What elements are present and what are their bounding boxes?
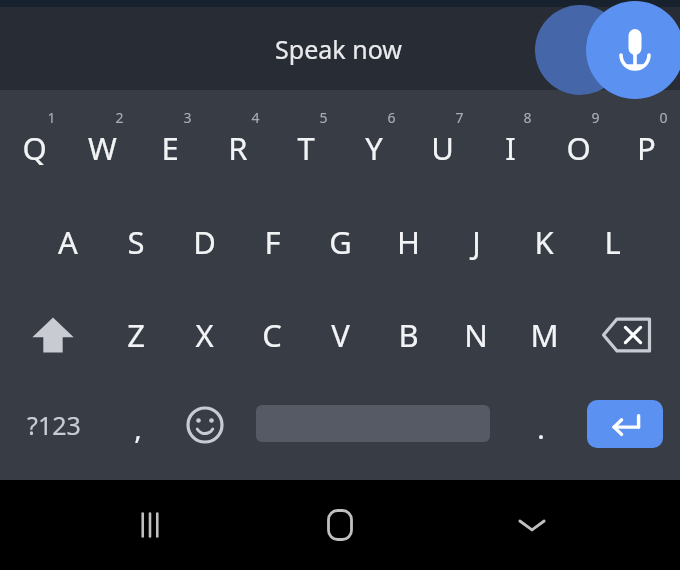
- button[interactable]: Speak now: [0, 7, 680, 90]
- staticText: 8: [523, 108, 532, 127]
- staticText: C: [262, 314, 282, 356]
- staticText: L: [604, 221, 621, 263]
- staticText: X: [195, 314, 214, 356]
- staticText: A: [58, 221, 78, 263]
- staticText: E: [161, 127, 179, 169]
- staticText: P: [637, 127, 656, 169]
- button[interactable]: Enter: [587, 400, 663, 448]
- button[interactable]: F: [238, 196, 306, 288]
- staticText: .: [537, 409, 545, 447]
- staticText: Z: [127, 314, 145, 356]
- staticText: Y: [365, 127, 383, 169]
- staticText: H: [397, 221, 420, 263]
- button[interactable]: ,: [104, 387, 172, 463]
- staticText: 1: [47, 108, 56, 127]
- button[interactable]: O: [544, 95, 612, 191]
- staticText: M: [530, 314, 559, 356]
- staticText: B: [398, 314, 419, 356]
- button[interactable]: I: [476, 95, 544, 191]
- button[interactable]: .: [508, 387, 574, 463]
- button[interactable]: ?123: [8, 387, 100, 463]
- button[interactable]: Home: [300, 492, 380, 558]
- staticText: 4: [251, 108, 260, 127]
- staticText: W: [88, 127, 117, 169]
- staticText: Q: [22, 127, 47, 169]
- staticText: ?123: [27, 408, 81, 442]
- staticText: D: [193, 221, 216, 263]
- button[interactable]: D: [170, 196, 238, 288]
- button[interactable]: J: [442, 196, 510, 288]
- button[interactable]: M: [510, 293, 578, 377]
- button[interactable]: H: [374, 196, 442, 288]
- button[interactable]: Hide keyboard: [492, 492, 572, 558]
- staticText: 7: [455, 108, 464, 127]
- staticText: I: [505, 127, 516, 169]
- button[interactable]: Backspace: [584, 293, 670, 377]
- button[interactable]: P: [612, 95, 680, 191]
- staticText: Speak now: [275, 32, 402, 66]
- button[interactable]: Q: [0, 95, 68, 191]
- button[interactable]: A: [34, 196, 102, 288]
- button[interactable]: N: [442, 293, 510, 377]
- button[interactable]: Z: [102, 293, 170, 377]
- staticText: U: [431, 127, 454, 169]
- staticText: 9: [591, 108, 600, 127]
- button[interactable]: V: [306, 293, 374, 377]
- button[interactable]: T: [272, 95, 340, 191]
- button[interactable]: Emoji: [172, 387, 238, 463]
- staticText: 6: [387, 108, 396, 127]
- button[interactable]: B: [374, 293, 442, 377]
- button[interactable]: W: [68, 95, 136, 191]
- staticText: ,: [134, 409, 142, 447]
- button[interactable]: E: [136, 95, 204, 191]
- button[interactable]: Y: [340, 95, 408, 191]
- staticText: 3: [183, 108, 192, 127]
- staticText: K: [534, 221, 554, 263]
- staticText: N: [464, 314, 488, 356]
- button[interactable]: Recents: [110, 492, 190, 558]
- staticText: V: [331, 314, 350, 356]
- staticText: 0: [659, 108, 668, 127]
- button[interactable]: R: [204, 95, 272, 191]
- button[interactable]: L: [578, 196, 646, 288]
- staticText: T: [297, 127, 315, 169]
- button[interactable]: S: [102, 196, 170, 288]
- staticText: 2: [115, 108, 124, 127]
- button[interactable]: Shift: [10, 293, 96, 377]
- staticText: R: [228, 127, 248, 169]
- button[interactable]: U: [408, 95, 476, 191]
- button[interactable]: Voice input: [532, 0, 680, 90]
- button[interactable]: X: [170, 293, 238, 377]
- button[interactable]: K: [510, 196, 578, 288]
- staticText: F: [264, 221, 281, 263]
- staticText: 5: [319, 108, 328, 127]
- button[interactable]: G: [306, 196, 374, 288]
- button[interactable]: C: [238, 293, 306, 377]
- staticText: S: [127, 221, 145, 263]
- staticText: G: [329, 221, 352, 263]
- staticText: O: [566, 127, 591, 169]
- staticText: J: [472, 221, 481, 263]
